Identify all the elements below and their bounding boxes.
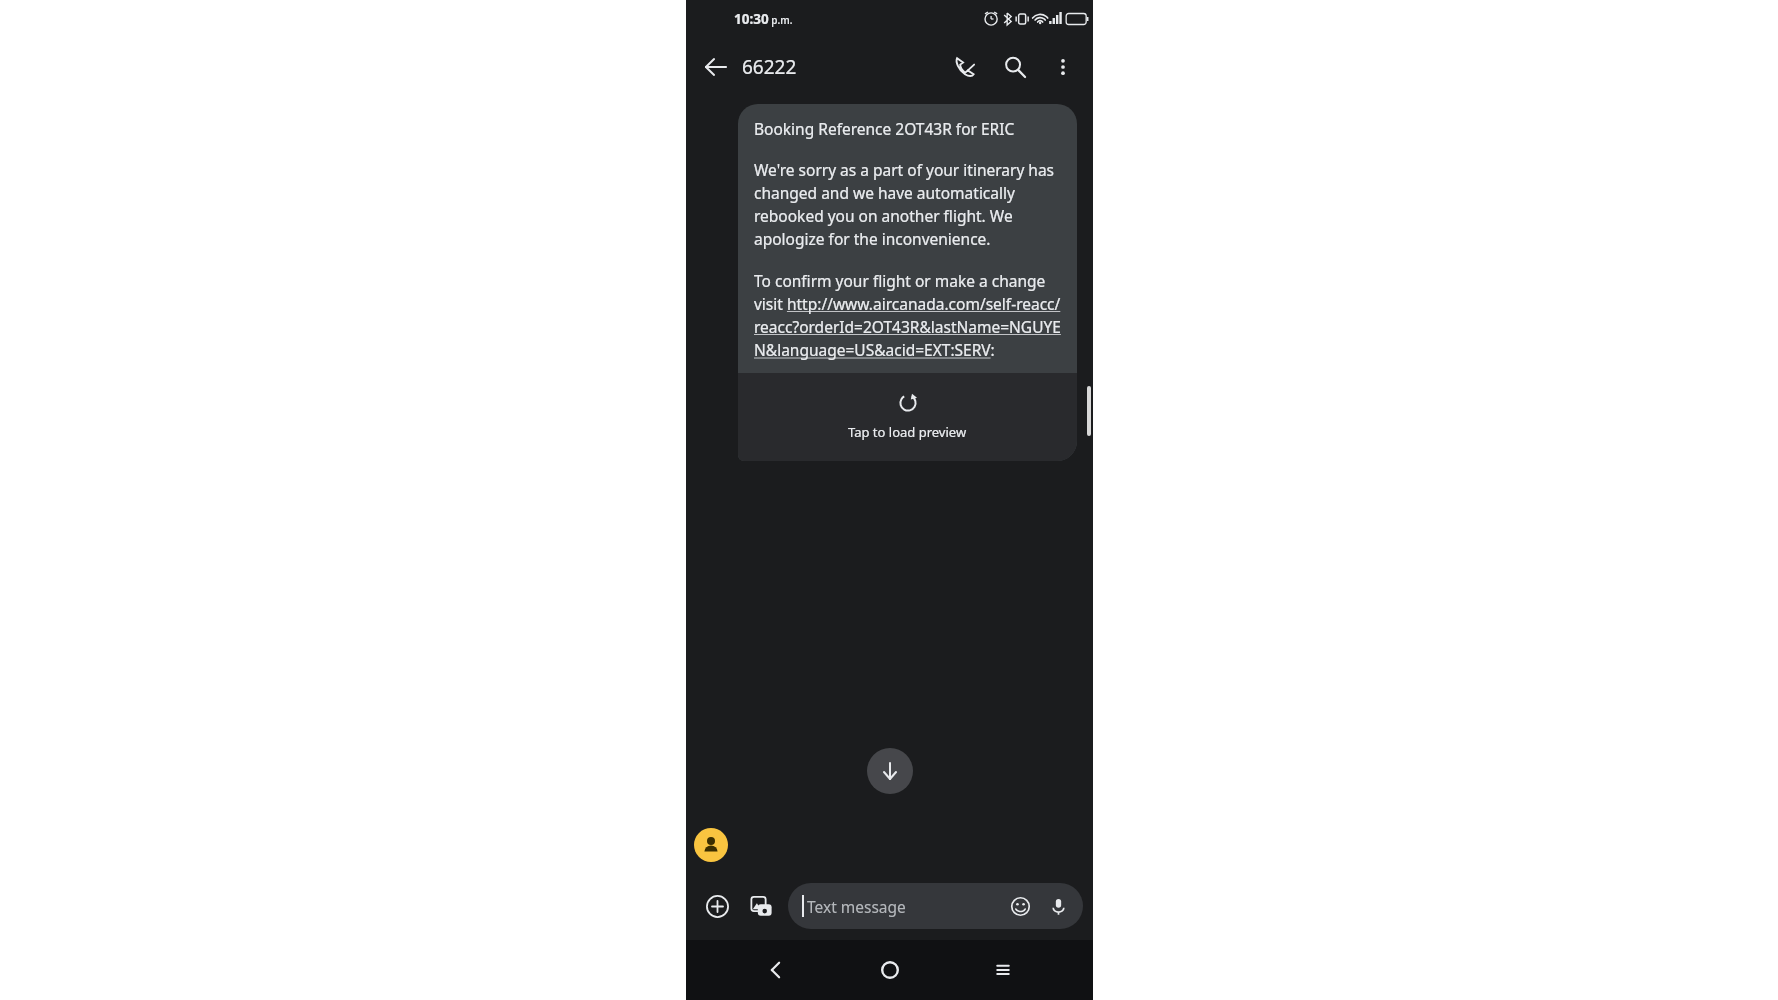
staticText: Text message	[807, 896, 906, 917]
button[interactable]: Add attachment	[696, 885, 738, 927]
button[interactable]: Tap to load preview	[738, 373, 1077, 461]
button[interactable]: More options	[1043, 47, 1083, 87]
staticText: We're sorry as a part of your itinerary …	[754, 159, 1061, 250]
button[interactable]: Home	[866, 946, 914, 994]
button[interactable]: Recent apps	[979, 946, 1027, 994]
staticText: To confirm your flight or make a change …	[754, 270, 1061, 361]
button[interactable]: Send photo	[740, 885, 782, 927]
staticText: 10:30 p.m.	[734, 10, 793, 28]
button[interactable]: Voice message	[1041, 889, 1075, 923]
button[interactable]: Search	[993, 45, 1037, 89]
staticText: 66222	[742, 54, 797, 80]
button[interactable]: Back	[752, 946, 800, 994]
button[interactable]: Booking Reference 2OT43R for ERIC	[738, 104, 1077, 461]
button[interactable]: Text message	[788, 883, 1083, 929]
staticText: Tap to load preview	[848, 423, 967, 441]
button[interactable]: Scroll to bottom	[867, 748, 913, 794]
button[interactable]: Back	[694, 45, 738, 89]
button[interactable]: Call	[943, 45, 987, 89]
button[interactable]: Emoji	[1003, 889, 1037, 923]
button[interactable]: Contact avatar	[694, 828, 728, 862]
staticText: Booking Reference 2OT43R for ERIC	[754, 118, 1015, 139]
